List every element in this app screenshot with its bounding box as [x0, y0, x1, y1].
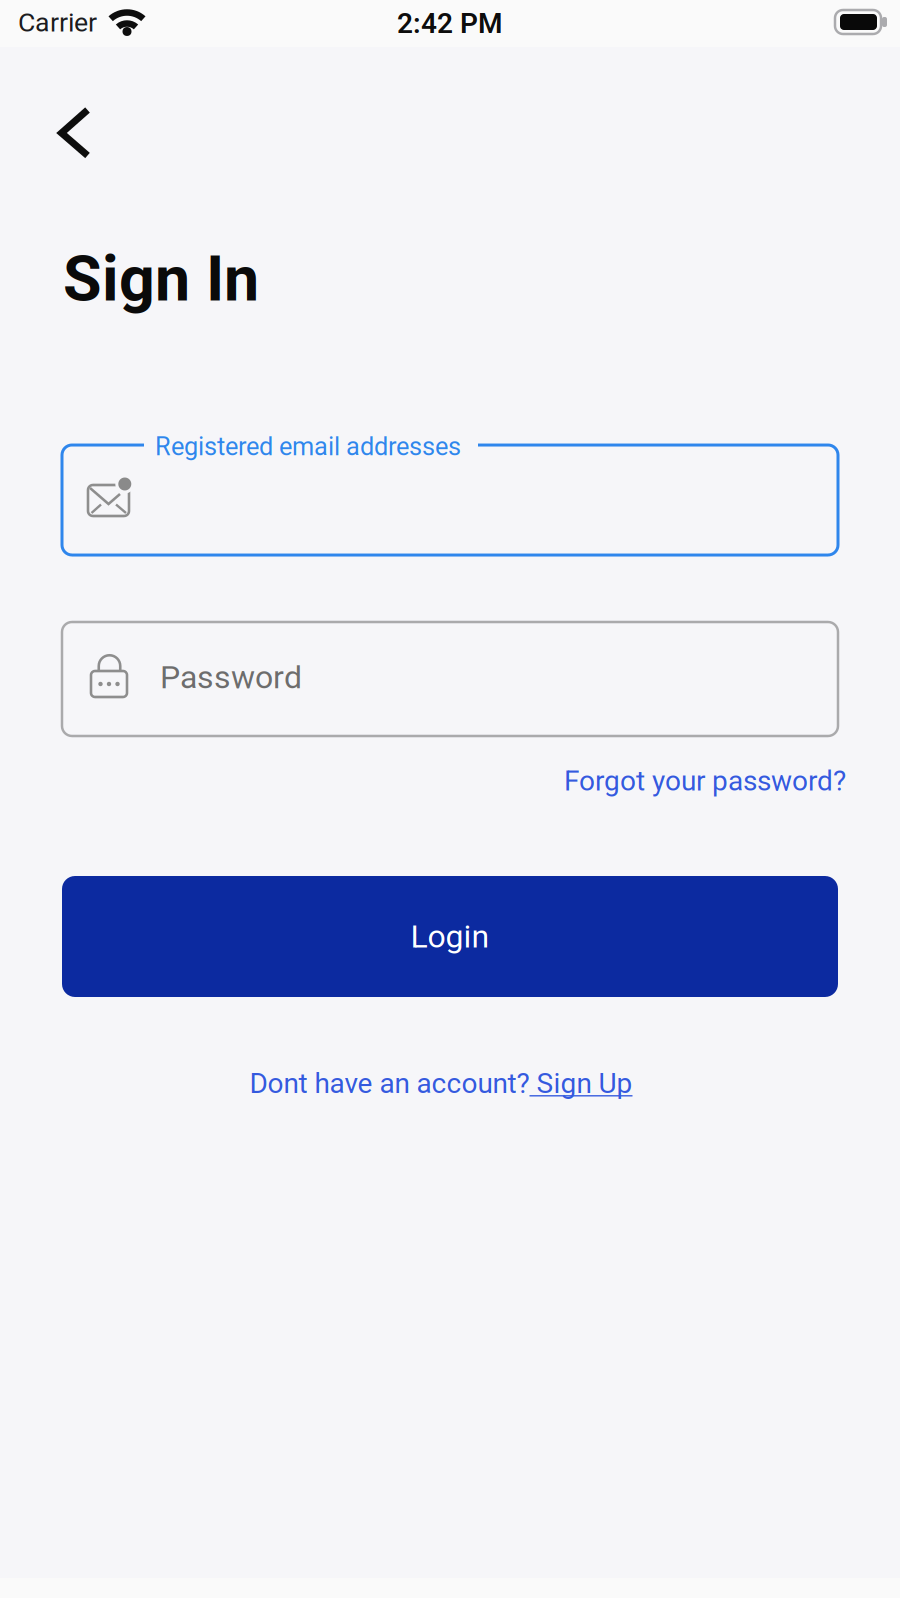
staticText: Carrier: [18, 7, 97, 38]
button[interactable]: Password: [62, 622, 838, 736]
staticText: Sign In: [63, 243, 259, 315]
button[interactable]: [58, 108, 92, 158]
staticText: Forgot your password?: [564, 765, 846, 797]
staticText: Sign Up: [529, 1067, 632, 1099]
button[interactable]: Sign Up: [529, 1067, 632, 1099]
staticText: Registered email addresses: [155, 432, 461, 461]
staticText: Dont have an account?: [249, 1067, 529, 1099]
button[interactable]: Forgot your password?: [246, 765, 846, 797]
staticText: Password: [160, 659, 302, 696]
staticText: Login: [410, 918, 489, 955]
staticText: 2:42 PM: [397, 7, 503, 39]
button[interactable]: Login: [62, 876, 838, 997]
button[interactable]: Registered email addresses: [62, 445, 838, 555]
